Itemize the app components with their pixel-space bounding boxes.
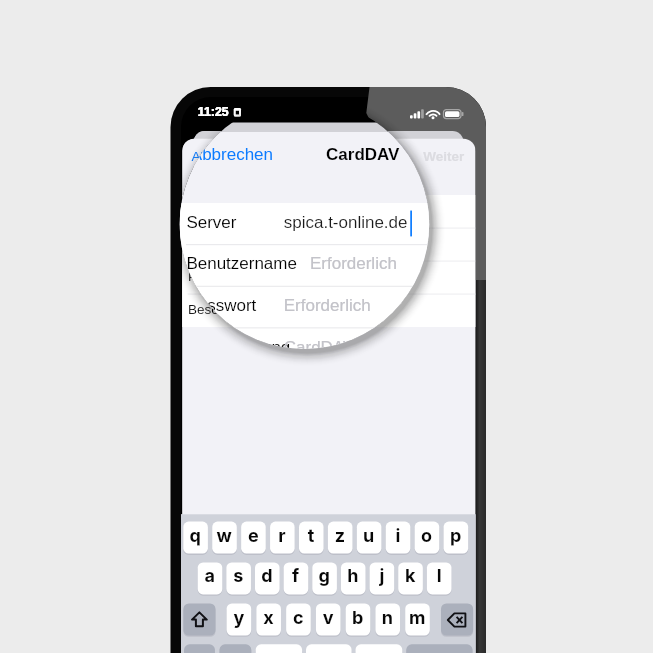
- button[interactable]: CardDAV account setup screen with magnif…: [0, 0, 653, 653]
